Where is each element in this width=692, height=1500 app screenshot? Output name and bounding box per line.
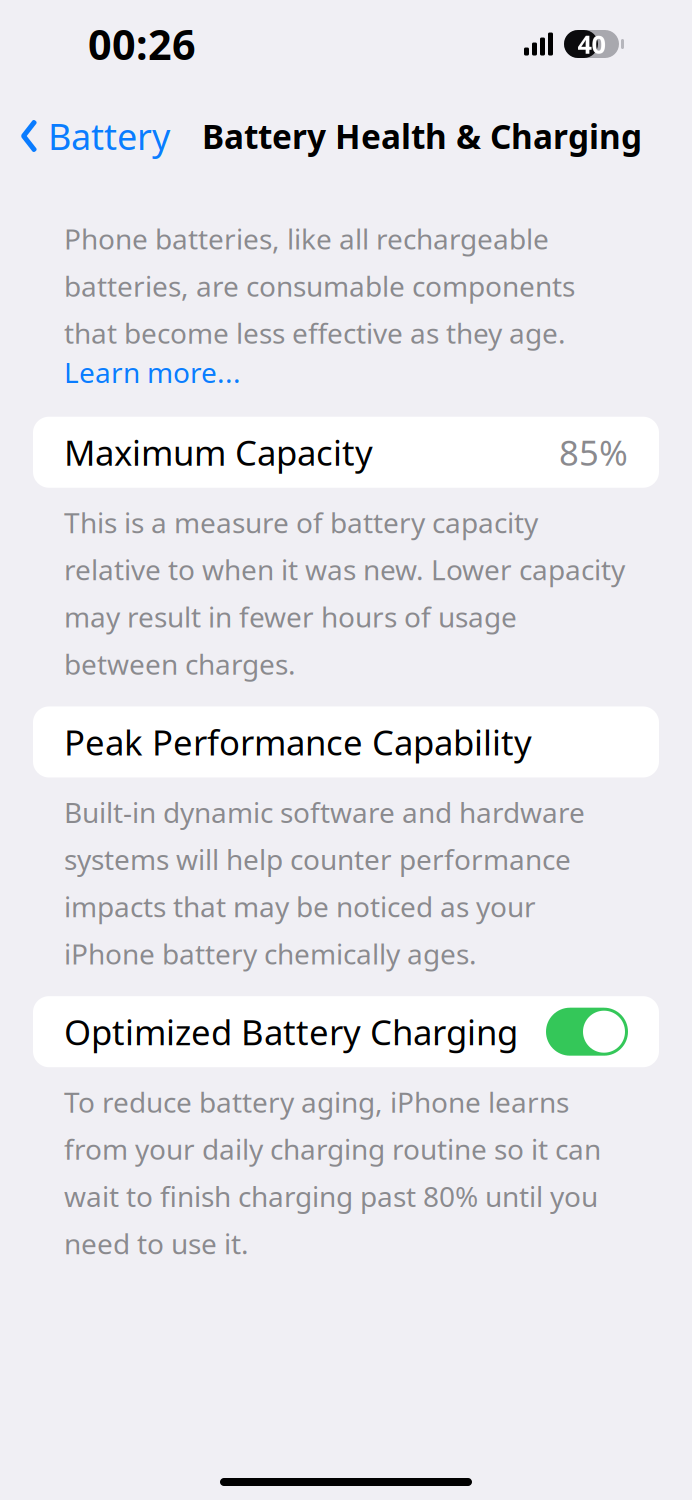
- button[interactable]: Optimized Battery Charging: [33, 996, 659, 1067]
- staticText: Peak Performance Capability: [64, 719, 532, 765]
- staticText: Maximum Capacity: [64, 429, 373, 475]
- button[interactable]: Maximum Capacity: [33, 417, 659, 488]
- button[interactable]: Learn more...: [0, 351, 241, 391]
- button[interactable]: Battery: [0, 110, 178, 162]
- staticText: Learn more...: [64, 353, 241, 391]
- button[interactable]: Peak Performance Capability: [33, 706, 659, 777]
- staticText: Battery Health & Charging: [202, 114, 642, 158]
- staticText: 00:26: [88, 17, 196, 71]
- staticText: 40: [577, 27, 605, 61]
- staticText: This is a measure of battery capacity re…: [64, 504, 625, 682]
- staticText: Battery: [48, 112, 170, 160]
- staticText: To reduce battery aging, iPhone learns f…: [64, 1083, 601, 1262]
- staticText: Optimized Battery Charging: [64, 1009, 518, 1055]
- staticText: 85%: [559, 429, 628, 475]
- staticText: Built-in dynamic software and hardware s…: [64, 793, 585, 972]
- staticText: Phone batteries, like all rechargeable b…: [64, 220, 575, 351]
